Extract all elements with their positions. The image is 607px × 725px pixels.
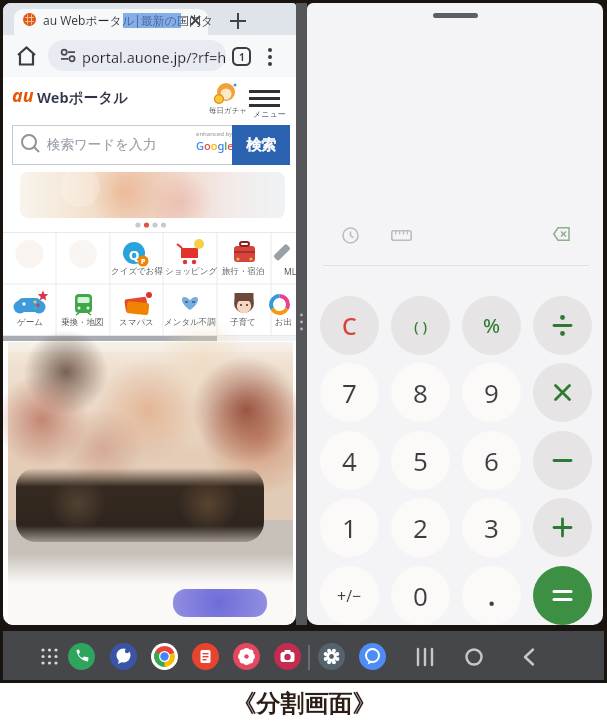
staticText: Google [196, 138, 234, 153]
button[interactable]: 8 [391, 363, 450, 422]
staticText: 1 [342, 510, 357, 545]
staticText: P [141, 257, 146, 267]
staticText: enhanced by [196, 130, 233, 138]
button[interactable] [533, 498, 592, 557]
staticText: 1 [239, 50, 245, 64]
button[interactable] [14, 9, 208, 35]
button[interactable] [230, 13, 246, 29]
staticText: クイズでお得 [111, 266, 163, 277]
button[interactable] [110, 643, 137, 670]
button[interactable]: C [320, 296, 379, 355]
staticText: ゲーム [17, 317, 43, 328]
staticText: 毎日ガチャ [209, 106, 248, 115]
button[interactable] [39, 646, 61, 668]
button[interactable] [533, 431, 592, 490]
button[interactable]: 1 [232, 47, 251, 66]
button[interactable]: 7 [320, 363, 379, 422]
button[interactable] [249, 90, 280, 107]
staticText: au Webポータル|最新の国内タ [43, 12, 214, 28]
button[interactable] [533, 363, 592, 422]
staticText: 7 [342, 375, 357, 410]
button[interactable] [416, 648, 434, 666]
button[interactable] [48, 40, 226, 71]
staticText: 6 [484, 443, 499, 478]
button[interactable]: 1 [320, 498, 379, 557]
button[interactable] [213, 82, 237, 106]
staticText: Q [129, 246, 140, 264]
staticText: 乗換・地図 [61, 317, 104, 328]
button[interactable] [342, 227, 359, 244]
button[interactable]: % [462, 296, 521, 355]
staticText: 3 [484, 510, 499, 545]
button[interactable] [68, 643, 95, 670]
staticText: 5 [413, 443, 428, 478]
button[interactable]: ( ) [391, 296, 450, 355]
button[interactable] [274, 643, 301, 670]
button[interactable]: 6 [462, 431, 521, 490]
button[interactable]: +/− [320, 566, 379, 625]
staticText: 《分割画面》 [232, 689, 376, 719]
button[interactable] [192, 643, 219, 670]
staticText: C [342, 310, 357, 341]
staticText: ML [284, 266, 296, 278]
button[interactable] [523, 648, 535, 666]
button[interactable] [151, 643, 178, 670]
button[interactable] [391, 230, 412, 241]
button[interactable]: 0 [391, 566, 450, 625]
staticText: 子育て [230, 317, 256, 328]
staticText: スマパス [119, 317, 154, 328]
staticText: 検索ワードを入力 [47, 136, 156, 153]
staticText: メニュー [253, 109, 286, 119]
button[interactable] [266, 47, 274, 67]
button[interactable]: . [462, 566, 521, 625]
button[interactable] [465, 648, 483, 666]
button[interactable] [233, 643, 260, 670]
button[interactable] [359, 643, 386, 670]
staticText: au [12, 83, 34, 108]
staticText: 8 [413, 375, 428, 410]
staticText: Webポータル [37, 87, 128, 107]
button[interactable]: 4 [320, 431, 379, 490]
staticText: +/− [337, 585, 362, 607]
button[interactable]: 5 [391, 431, 450, 490]
staticText: . [488, 578, 496, 613]
staticText: 4 [342, 443, 357, 478]
button[interactable] [553, 227, 570, 241]
staticText: メンタル不調 [164, 317, 216, 328]
staticText: お出 [275, 317, 293, 328]
button[interactable] [318, 643, 345, 670]
staticText: 0 [413, 578, 428, 613]
button[interactable]: 9 [462, 363, 521, 422]
button[interactable] [16, 46, 37, 66]
button[interactable]: 3 [462, 498, 521, 557]
staticText: 旅行・宿泊 [222, 266, 265, 277]
button[interactable] [533, 296, 592, 355]
staticText: 2 [413, 510, 428, 545]
button[interactable]: 検索 [232, 125, 290, 165]
staticText: 9 [484, 375, 499, 410]
staticText: ( ) [414, 316, 428, 336]
staticText: ショッピング [165, 266, 218, 277]
button[interactable]: 2 [391, 498, 450, 557]
staticText: 検索 [246, 136, 276, 155]
button[interactable] [20, 172, 285, 218]
staticText: % [483, 312, 501, 339]
staticText: portal.auone.jp/?rf=h [82, 47, 227, 67]
button[interactable] [533, 566, 592, 625]
